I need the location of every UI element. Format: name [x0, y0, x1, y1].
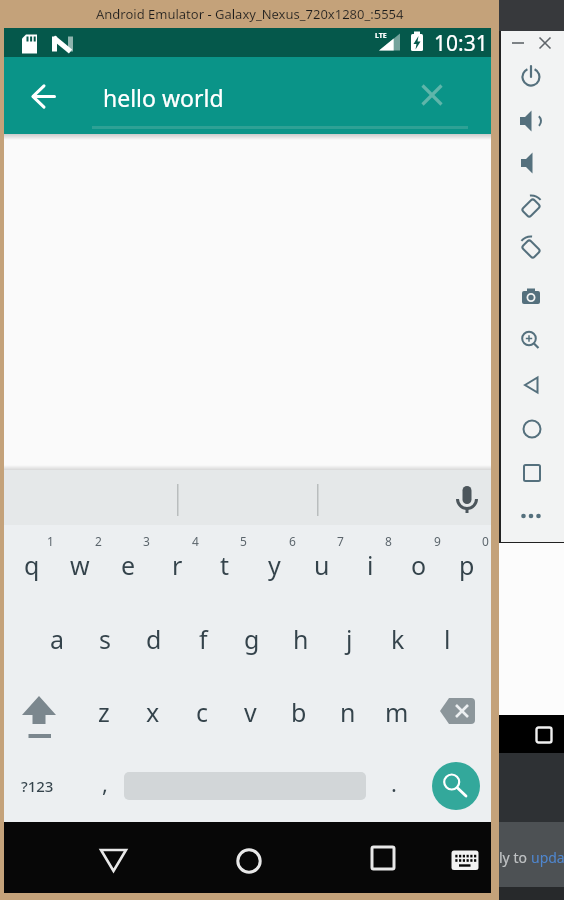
button[interactable]: , — [87, 761, 123, 805]
button[interactable] — [88, 834, 138, 884]
staticText: 6 — [289, 533, 296, 549]
button[interactable] — [508, 33, 528, 53]
button[interactable]: w — [57, 542, 103, 588]
staticText: ly to — [499, 848, 531, 867]
button[interactable]: t — [202, 542, 248, 588]
staticText: x — [146, 695, 160, 729]
button[interactable]: s — [82, 616, 128, 662]
button[interactable]: k — [375, 616, 421, 662]
button[interactable]: e — [105, 542, 151, 588]
staticText: 1 — [47, 533, 54, 549]
button[interactable]: b — [276, 689, 322, 735]
button[interactable] — [513, 411, 549, 447]
button[interactable]: g — [229, 616, 275, 662]
button[interactable]: i — [347, 542, 393, 588]
staticText: i — [367, 548, 374, 582]
button[interactable]: m — [374, 689, 420, 735]
staticText: s — [99, 622, 111, 656]
button[interactable]: q — [9, 542, 55, 588]
staticText: c — [196, 695, 209, 729]
staticText: f — [199, 622, 208, 656]
staticText: t — [220, 548, 230, 582]
button[interactable] — [433, 688, 483, 736]
staticText: j — [346, 622, 353, 656]
button[interactable]: p — [444, 542, 490, 588]
staticText: Android Emulator - Galaxy_Nexus_720x1280… — [96, 5, 404, 23]
button[interactable]: n — [325, 689, 371, 735]
staticText: 7 — [337, 533, 344, 549]
button[interactable] — [358, 834, 408, 884]
button[interactable] — [15, 688, 63, 740]
staticText: u — [314, 548, 330, 582]
button[interactable]: d — [131, 616, 177, 662]
button[interactable]: x — [130, 689, 176, 735]
button[interactable] — [408, 71, 456, 119]
staticText: ?123 — [21, 776, 54, 796]
button[interactable]: c — [179, 689, 225, 735]
button[interactable]: j — [326, 616, 372, 662]
staticText: q — [24, 548, 40, 582]
staticText: o — [411, 548, 427, 582]
button[interactable]: f — [180, 616, 226, 662]
button[interactable]: l — [424, 616, 470, 662]
staticText: 0 — [482, 533, 489, 549]
staticText: w — [70, 548, 90, 582]
staticText: LTE — [375, 31, 387, 41]
button[interactable]: ?123 — [12, 766, 62, 806]
button[interactable] — [513, 323, 549, 359]
button[interactable] — [513, 145, 549, 181]
staticText: d — [146, 622, 162, 656]
staticText: hello world — [103, 82, 224, 113]
staticText: l — [444, 622, 451, 656]
button[interactable] — [513, 367, 549, 403]
button[interactable]: update: — [531, 848, 564, 867]
staticText: . — [391, 768, 397, 798]
button[interactable] — [513, 189, 549, 225]
staticText: a — [50, 622, 65, 656]
button[interactable] — [513, 500, 549, 536]
staticText: 2 — [95, 533, 102, 549]
button[interactable]: r — [154, 542, 200, 588]
staticText: g — [244, 622, 260, 656]
staticText: 3 — [143, 533, 150, 549]
button[interactable] — [513, 59, 549, 95]
staticText: 9 — [434, 533, 441, 549]
button[interactable] — [24, 72, 72, 120]
button[interactable]: y — [251, 542, 297, 588]
button[interactable] — [513, 279, 549, 315]
button[interactable] — [513, 103, 549, 139]
button[interactable] — [513, 455, 549, 491]
button[interactable] — [513, 230, 549, 266]
staticText: r — [172, 548, 183, 582]
button[interactable] — [224, 834, 274, 884]
staticText: 10:31 — [434, 29, 488, 57]
button[interactable]: z — [81, 689, 127, 735]
button[interactable]: o — [396, 542, 442, 588]
staticText: b — [291, 695, 307, 729]
button[interactable] — [432, 762, 480, 810]
staticText: z — [98, 695, 110, 729]
staticText: y — [268, 548, 281, 582]
button[interactable]: h — [278, 616, 324, 662]
button[interactable] — [535, 33, 555, 53]
button[interactable] — [445, 477, 489, 521]
button[interactable]: u — [299, 542, 345, 588]
button[interactable]: a — [34, 616, 80, 662]
button[interactable]: . — [376, 761, 412, 805]
staticText: 5 — [240, 533, 247, 549]
staticText: h — [293, 622, 309, 656]
staticText: 4 — [192, 533, 199, 549]
staticText: p — [459, 548, 475, 582]
staticText: 8 — [385, 533, 392, 549]
button[interactable] — [442, 840, 488, 880]
button[interactable]: v — [227, 689, 273, 735]
staticText: v — [244, 695, 257, 729]
staticText: e — [121, 548, 136, 582]
staticText: , — [102, 768, 108, 798]
staticText: k — [391, 622, 405, 656]
staticText: m — [385, 695, 409, 729]
staticText: n — [340, 695, 356, 729]
